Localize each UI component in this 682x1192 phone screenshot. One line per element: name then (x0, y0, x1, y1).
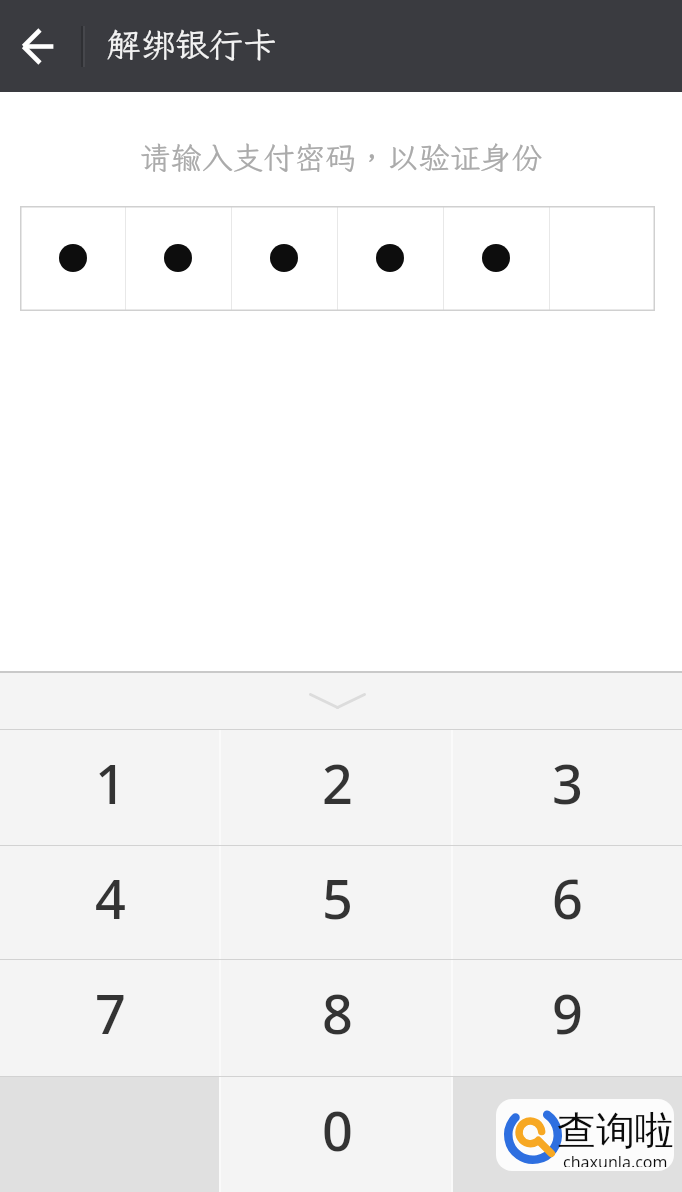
button[interactable]: 7 (0, 960, 221, 1076)
staticText: 5 (322, 861, 353, 935)
button[interactable] (337, 206, 443, 311)
staticText: 1 (95, 746, 126, 820)
staticText: 8 (322, 976, 353, 1050)
staticText: 4 (95, 861, 126, 935)
button[interactable]: Delete (453, 1077, 682, 1192)
button[interactable] (125, 206, 231, 311)
staticText: chaxunla.com (563, 1151, 668, 1167)
button[interactable] (549, 206, 655, 311)
button[interactable]: 9 (453, 960, 682, 1076)
staticText: 2 (322, 746, 353, 820)
staticText: 6 (552, 861, 583, 935)
button[interactable]: Back (0, 0, 74, 92)
button[interactable]: 6 (453, 846, 682, 959)
button[interactable]: 1 (0, 730, 221, 845)
button[interactable]: 0 (221, 1077, 453, 1192)
staticText: 请输入支付密码，以验证身份 (0, 137, 682, 178)
staticText: 9 (552, 976, 583, 1050)
button[interactable]: 3 (453, 730, 682, 845)
staticText: 查询啦 (557, 1106, 674, 1155)
button[interactable] (20, 206, 125, 311)
button[interactable]: 8 (221, 960, 453, 1076)
button[interactable] (443, 206, 549, 311)
button[interactable]: 4 (0, 846, 221, 959)
staticText: 0 (322, 1093, 353, 1167)
button[interactable]: 2 (221, 730, 453, 845)
button[interactable]: 5 (221, 846, 453, 959)
staticText: 7 (95, 976, 126, 1050)
button[interactable] (231, 206, 337, 311)
staticText: 3 (552, 746, 583, 820)
staticText: 解绑银行卡 (107, 22, 277, 67)
